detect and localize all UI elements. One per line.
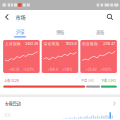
staticText: 2218.47 (103, 41, 115, 46)
staticText: 美股 (96, 28, 104, 35)
staticText: 上证指数 (5, 41, 21, 46)
staticText: 亿元 (4, 113, 10, 117)
button[interactable]: 沪深 (0, 24, 40, 40)
staticText: 大盘异动 (4, 100, 20, 107)
button[interactable]: Back (0, 10, 14, 24)
staticText: +42.31 (9, 68, 19, 72)
button[interactable]: 美股 (80, 24, 120, 40)
staticText: 创业板指 (82, 41, 98, 46)
button[interactable]: Search (103, 10, 117, 24)
staticText: +1.18% (62, 68, 72, 72)
staticText: 11025.8 (65, 41, 76, 46)
button[interactable]: 大盘异动 (0, 100, 120, 106)
staticText: 深证成指 (43, 41, 59, 46)
button[interactable]: 上证指数 (3, 40, 40, 73)
staticText: +1.63% (100, 68, 111, 72)
staticText: 3452.36 (25, 41, 38, 46)
staticText: +35.62 (86, 68, 97, 72)
staticText: 沪深 (16, 28, 24, 35)
button[interactable]: 港股 (40, 24, 80, 40)
staticText: 平盘 142 (81, 78, 94, 83)
staticText: 港股 (56, 28, 64, 35)
staticText: 下跌 1342 (101, 78, 116, 83)
staticText: 市场 (15, 13, 25, 21)
button[interactable]: 深证成指 (42, 40, 78, 73)
staticText: 上涨 3128 (4, 78, 19, 83)
staticText: +1.23% (23, 68, 34, 72)
button[interactable]: 创业板指 (80, 40, 117, 73)
staticText: +128.4 (48, 68, 58, 72)
